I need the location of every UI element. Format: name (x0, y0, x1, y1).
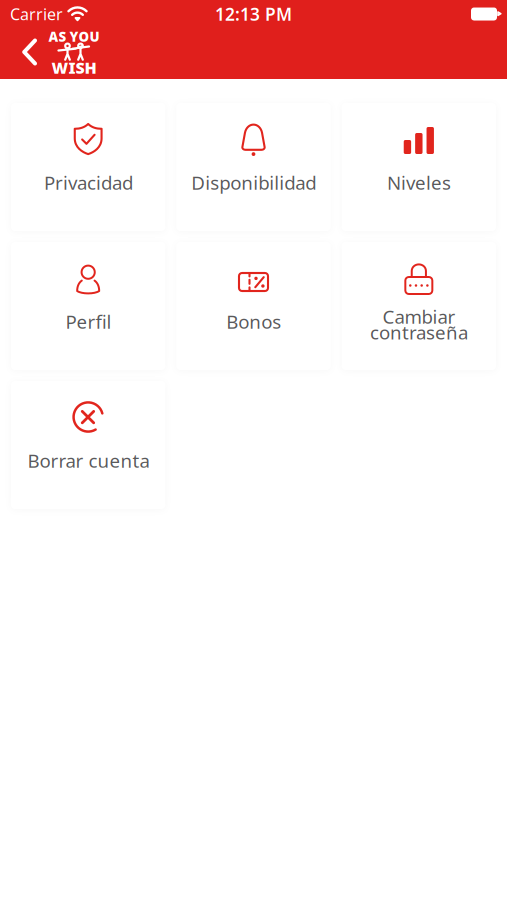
staticText: 12:13 PM (215, 2, 292, 25)
staticText: Disponibilidad (191, 170, 316, 195)
staticText: contraseña (370, 320, 468, 345)
staticText: Niveles (387, 170, 451, 195)
staticText: Borrar cuenta (27, 448, 149, 473)
button[interactable]: Perfil (11, 242, 165, 370)
button[interactable]: Niveles (342, 103, 496, 231)
staticText: AS YOU (48, 28, 99, 45)
staticText: Perfil (65, 309, 111, 334)
staticText: Cambiar (382, 304, 455, 329)
button[interactable]: Bonos (176, 242, 331, 370)
button[interactable]: Privacidad (11, 103, 165, 231)
staticText: Privacidad (44, 170, 133, 195)
staticText: WISH (51, 57, 96, 78)
button[interactable]: Cambiar (342, 242, 496, 370)
button[interactable]: Back (0, 33, 48, 71)
staticText: Carrier (10, 3, 63, 25)
staticText: Bonos (226, 309, 281, 334)
button[interactable]: Disponibilidad (176, 103, 331, 231)
button[interactable]: Borrar cuenta (11, 381, 165, 509)
